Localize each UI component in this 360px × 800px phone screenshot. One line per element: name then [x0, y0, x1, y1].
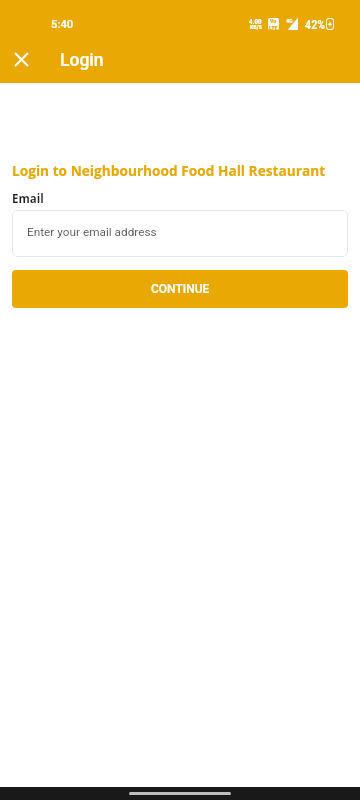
staticText: CONTINUE [151, 282, 210, 296]
staticText: Email [12, 191, 44, 207]
staticText: 4G [286, 17, 293, 24]
button[interactable]: Close [10, 49, 35, 74]
button[interactable]: Enter your email address [12, 210, 348, 257]
staticText: 42% [305, 18, 326, 32]
staticText: Enter your email address [27, 225, 157, 239]
staticText: 5:40 [51, 18, 74, 31]
staticText: Vo [270, 18, 277, 24]
staticText: 4.00 [249, 18, 262, 26]
staticText: LTE [269, 24, 278, 30]
button[interactable]: CONTINUE [12, 270, 348, 308]
staticText: Login to Neighbourhood Food Hall Restaur… [12, 161, 326, 180]
staticText: KB/S [250, 23, 262, 30]
staticText: Login [60, 50, 104, 71]
